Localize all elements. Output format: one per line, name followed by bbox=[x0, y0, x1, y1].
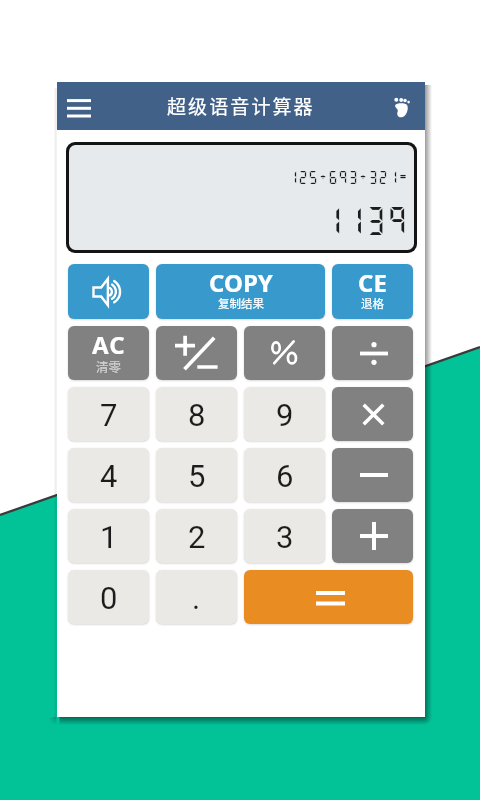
staticText: 清零 bbox=[96, 357, 122, 375]
staticText: 7 bbox=[100, 397, 118, 433]
button[interactable]: 6 bbox=[244, 448, 325, 502]
staticText: 9 bbox=[276, 397, 294, 433]
button[interactable] bbox=[332, 509, 413, 563]
button[interactable]: 0 bbox=[68, 570, 149, 624]
button[interactable]: Divide bbox=[332, 326, 413, 380]
button[interactable]: . bbox=[156, 570, 237, 624]
button[interactable]: 8 bbox=[156, 387, 237, 441]
button[interactable]: Speak result bbox=[68, 264, 149, 319]
button[interactable]: COPY bbox=[156, 264, 325, 319]
button[interactable]: CE bbox=[332, 264, 413, 319]
button[interactable]: Percent bbox=[244, 326, 325, 380]
button[interactable]: Menu bbox=[59, 89, 99, 129]
staticText: CE bbox=[358, 266, 387, 299]
button[interactable]: AC bbox=[68, 326, 149, 380]
button[interactable] bbox=[332, 387, 413, 441]
staticText: 8 bbox=[188, 397, 206, 433]
button[interactable]: 3 bbox=[244, 509, 325, 563]
staticText: 退格 bbox=[361, 295, 384, 312]
staticText: AC bbox=[92, 328, 126, 361]
staticText: 125÷693÷321= bbox=[287, 169, 408, 185]
staticText: 5 bbox=[188, 458, 206, 494]
button[interactable]: Plus minus bbox=[156, 326, 237, 380]
button[interactable]: Footprint bbox=[387, 92, 417, 122]
button[interactable]: 5 bbox=[156, 448, 237, 502]
button[interactable]: 9 bbox=[244, 387, 325, 441]
staticText: 1139 bbox=[321, 203, 408, 238]
staticText: 1 bbox=[100, 519, 118, 555]
button[interactable]: 2 bbox=[156, 509, 237, 563]
button[interactable] bbox=[332, 448, 413, 502]
button[interactable]: 1 bbox=[68, 509, 149, 563]
button[interactable]: 7 bbox=[68, 387, 149, 441]
staticText: 超级语音计算器 bbox=[167, 92, 315, 120]
button[interactable]: 4 bbox=[68, 448, 149, 502]
staticText: COPY bbox=[209, 266, 273, 299]
staticText: 0 bbox=[100, 580, 118, 616]
staticText: . bbox=[192, 580, 201, 616]
staticText: 3 bbox=[276, 519, 294, 555]
staticText: 4 bbox=[100, 458, 118, 494]
button[interactable]: Equals bbox=[244, 570, 413, 624]
staticText: 复制结果 bbox=[218, 295, 264, 312]
staticText: 6 bbox=[276, 458, 294, 494]
staticText: 2 bbox=[188, 519, 206, 555]
